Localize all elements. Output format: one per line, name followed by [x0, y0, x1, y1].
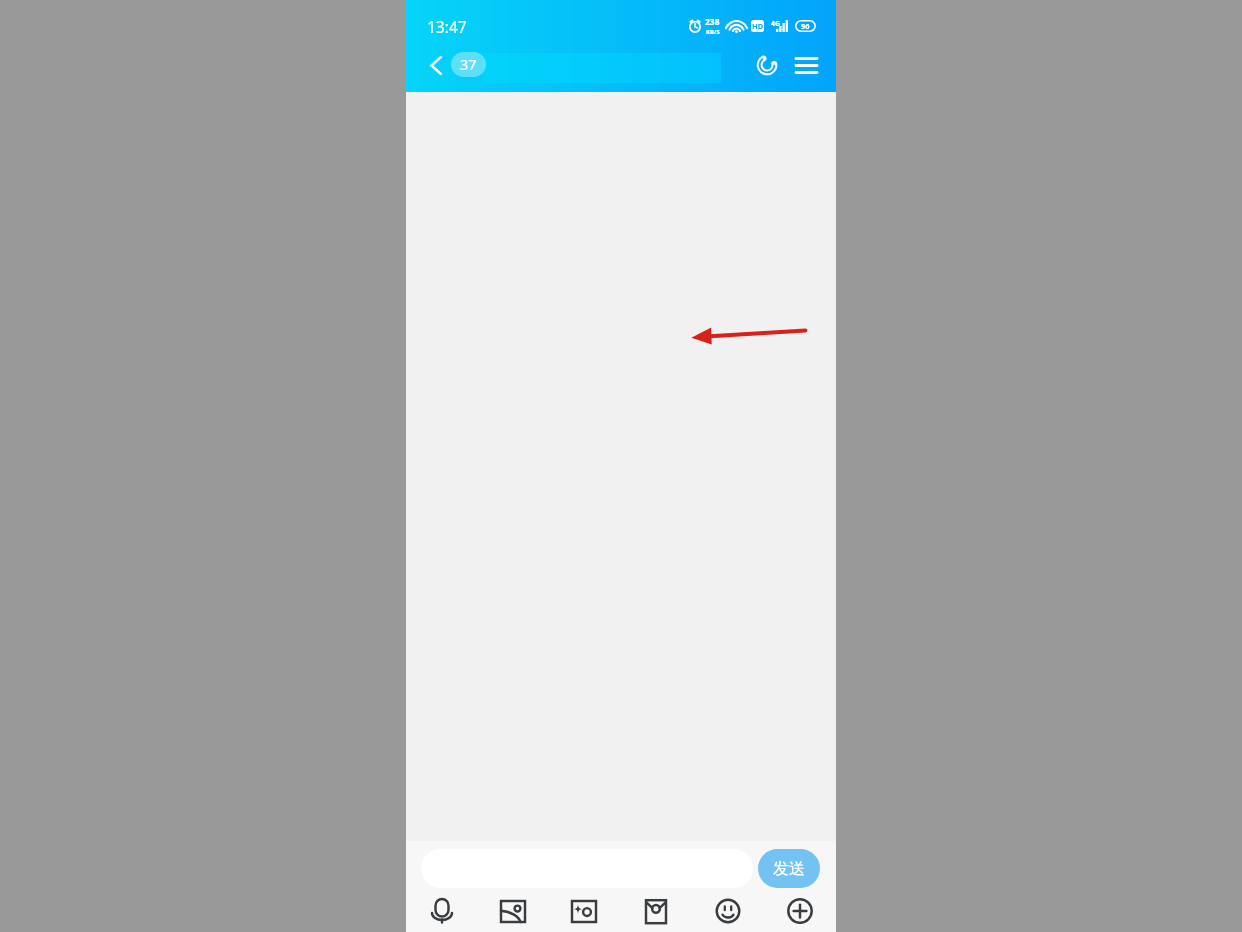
button[interactable]: More — [764, 889, 836, 932]
button[interactable]: 发送 — [758, 849, 820, 888]
button[interactable]: Voice — [406, 889, 477, 932]
staticText: 37 — [460, 54, 477, 74]
staticText: 4G — [771, 19, 781, 29]
staticText: 238 — [705, 16, 720, 28]
button[interactable]: Image — [477, 889, 548, 932]
staticText: 13:47 — [427, 16, 467, 37]
staticText: 发送 — [773, 859, 805, 879]
button[interactable]: Call — [754, 52, 780, 78]
button[interactable]: 37 — [451, 52, 486, 77]
staticText: HD — [752, 21, 764, 31]
staticText: 96 — [801, 21, 810, 31]
button[interactable]: Menu — [793, 52, 819, 78]
button[interactable]: Red packet — [620, 889, 692, 932]
button[interactable]: Camera — [548, 889, 620, 932]
staticText: KB/S — [706, 28, 720, 36]
button[interactable]: Back — [422, 51, 450, 79]
button[interactable]: Emoji — [692, 889, 764, 932]
